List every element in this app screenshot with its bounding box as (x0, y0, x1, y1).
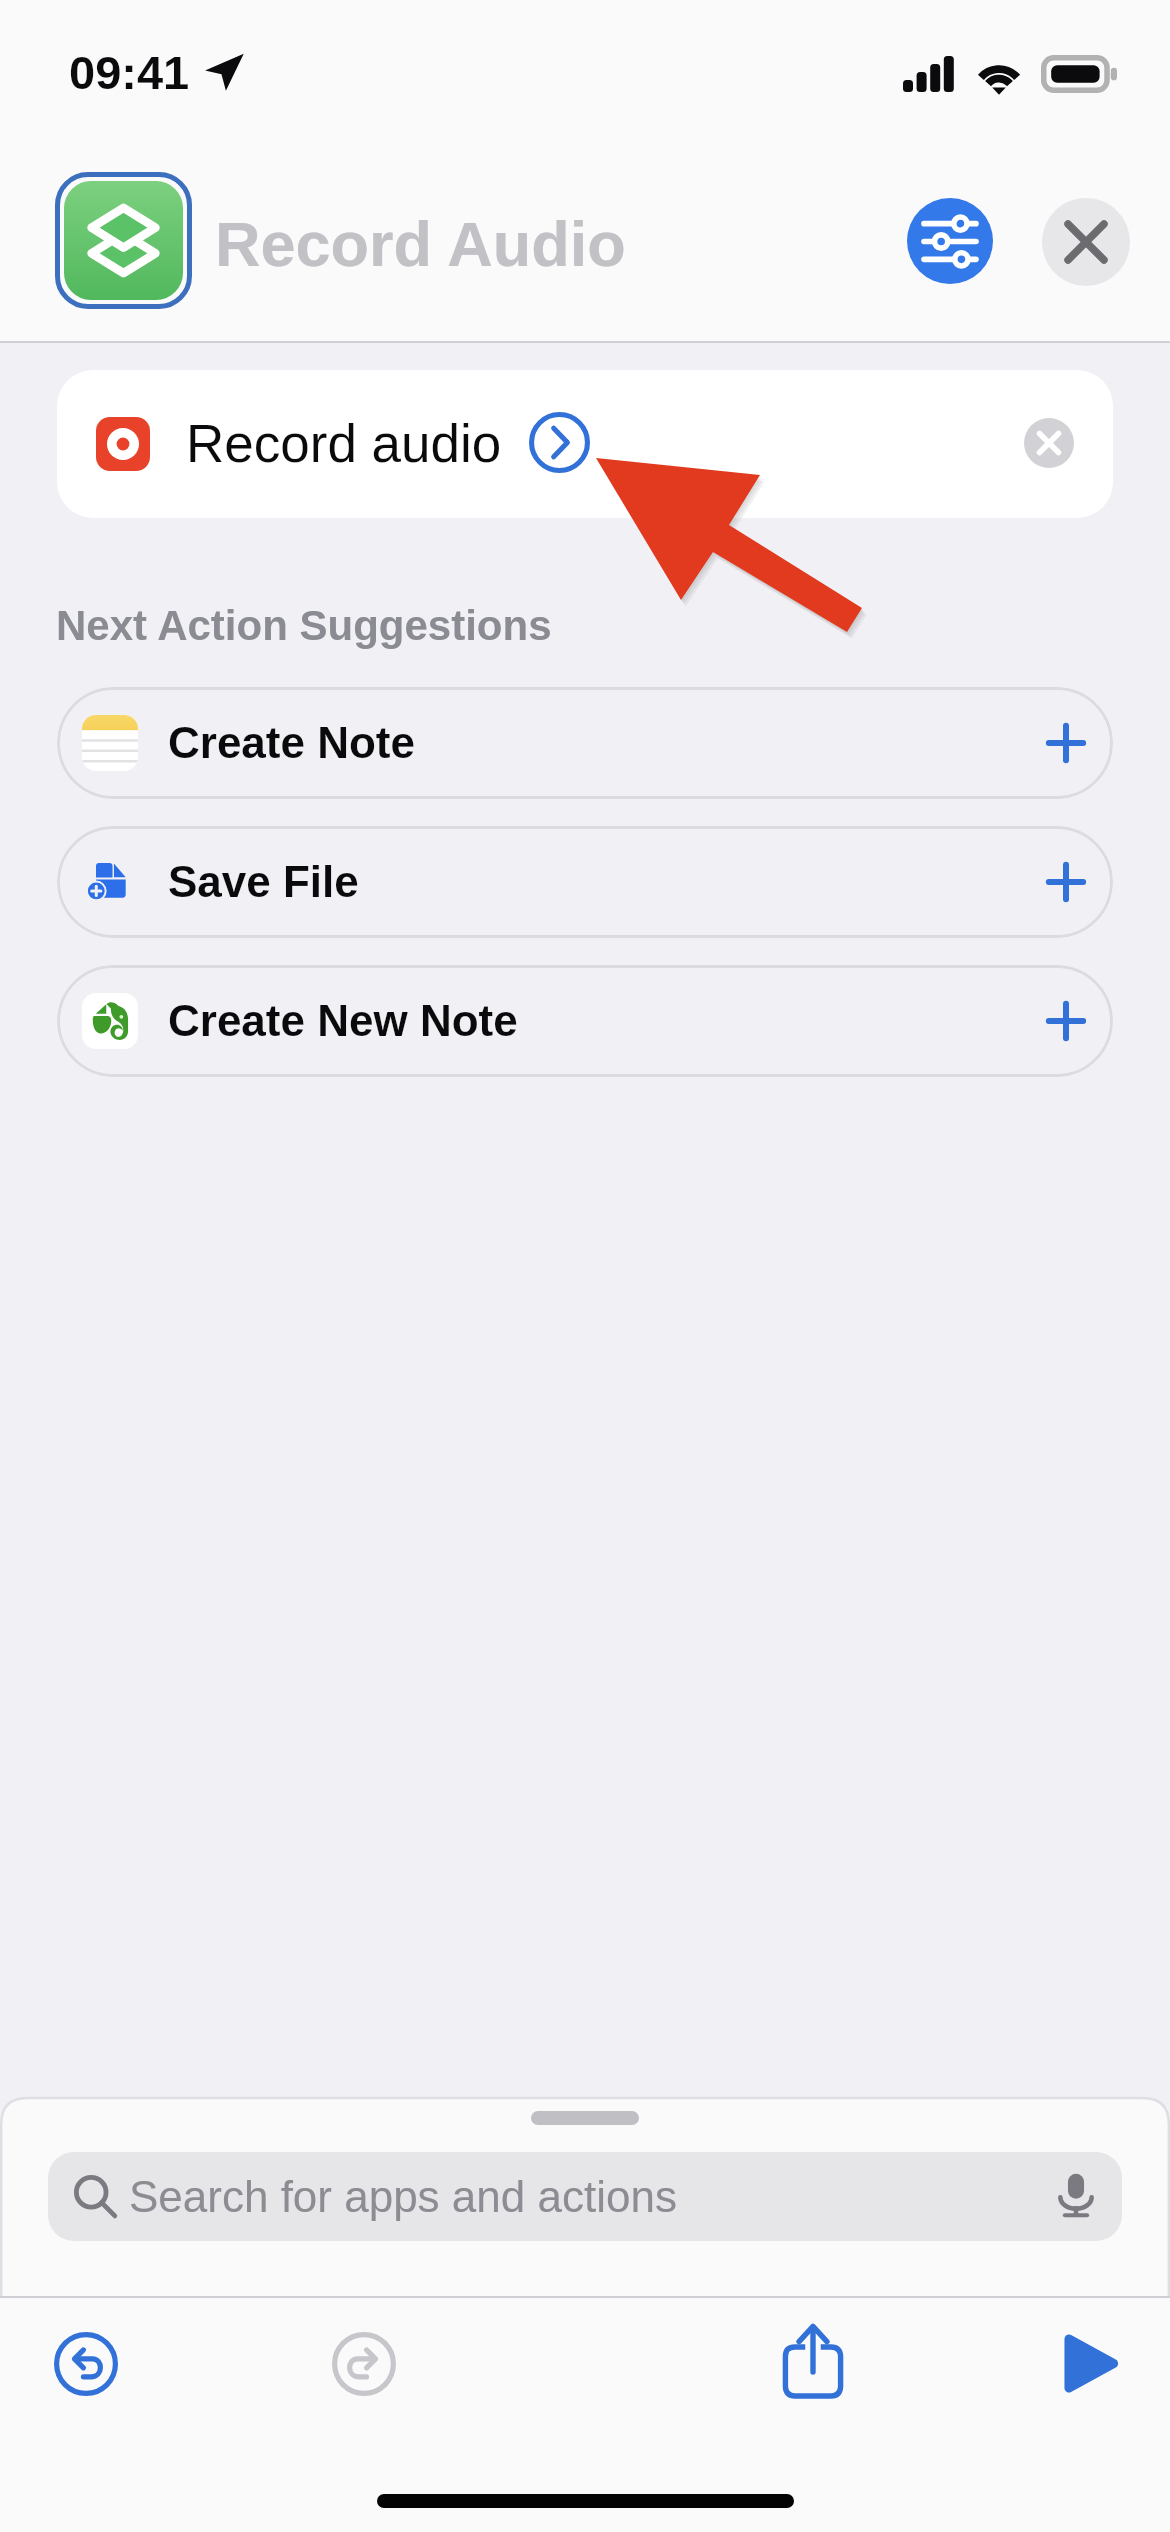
button[interactable]: Run shortcut (1062, 2332, 1120, 2395)
button[interactable]: Record audio (57, 370, 1113, 518)
button[interactable]: Save File (57, 826, 1113, 938)
button[interactable] (48, 2152, 1122, 2241)
button[interactable]: Close (1042, 198, 1130, 286)
button[interactable]: Record Audio (215, 209, 626, 279)
button[interactable]: Shortcut settings (907, 198, 993, 284)
button[interactable]: Create Note (57, 687, 1113, 799)
staticText: Record Audio (215, 209, 626, 279)
staticText: Search for apps and actions (129, 2172, 677, 2221)
button[interactable]: Create New Note (57, 965, 1113, 1077)
staticText: 09:41 (69, 46, 190, 99)
staticText: Next Action Suggestions (56, 602, 552, 649)
button[interactable]: Add Create Note (1040, 717, 1092, 769)
button[interactable]: Add Create New Note (1040, 995, 1092, 1047)
staticText: Create Note (168, 718, 415, 767)
button[interactable]: Show record audio details (529, 412, 590, 473)
staticText: Create New Note (168, 996, 518, 1045)
button[interactable]: Voice search (1053, 2172, 1099, 2218)
staticText: Save File (168, 857, 359, 906)
button[interactable]: Remove action (1024, 418, 1074, 468)
staticText: Record audio (186, 414, 502, 473)
button[interactable]: Redo (332, 2332, 396, 2396)
button[interactable]: Add Save File (1040, 856, 1092, 908)
button[interactable]: Undo (54, 2332, 118, 2396)
button[interactable]: Share (782, 2323, 844, 2399)
